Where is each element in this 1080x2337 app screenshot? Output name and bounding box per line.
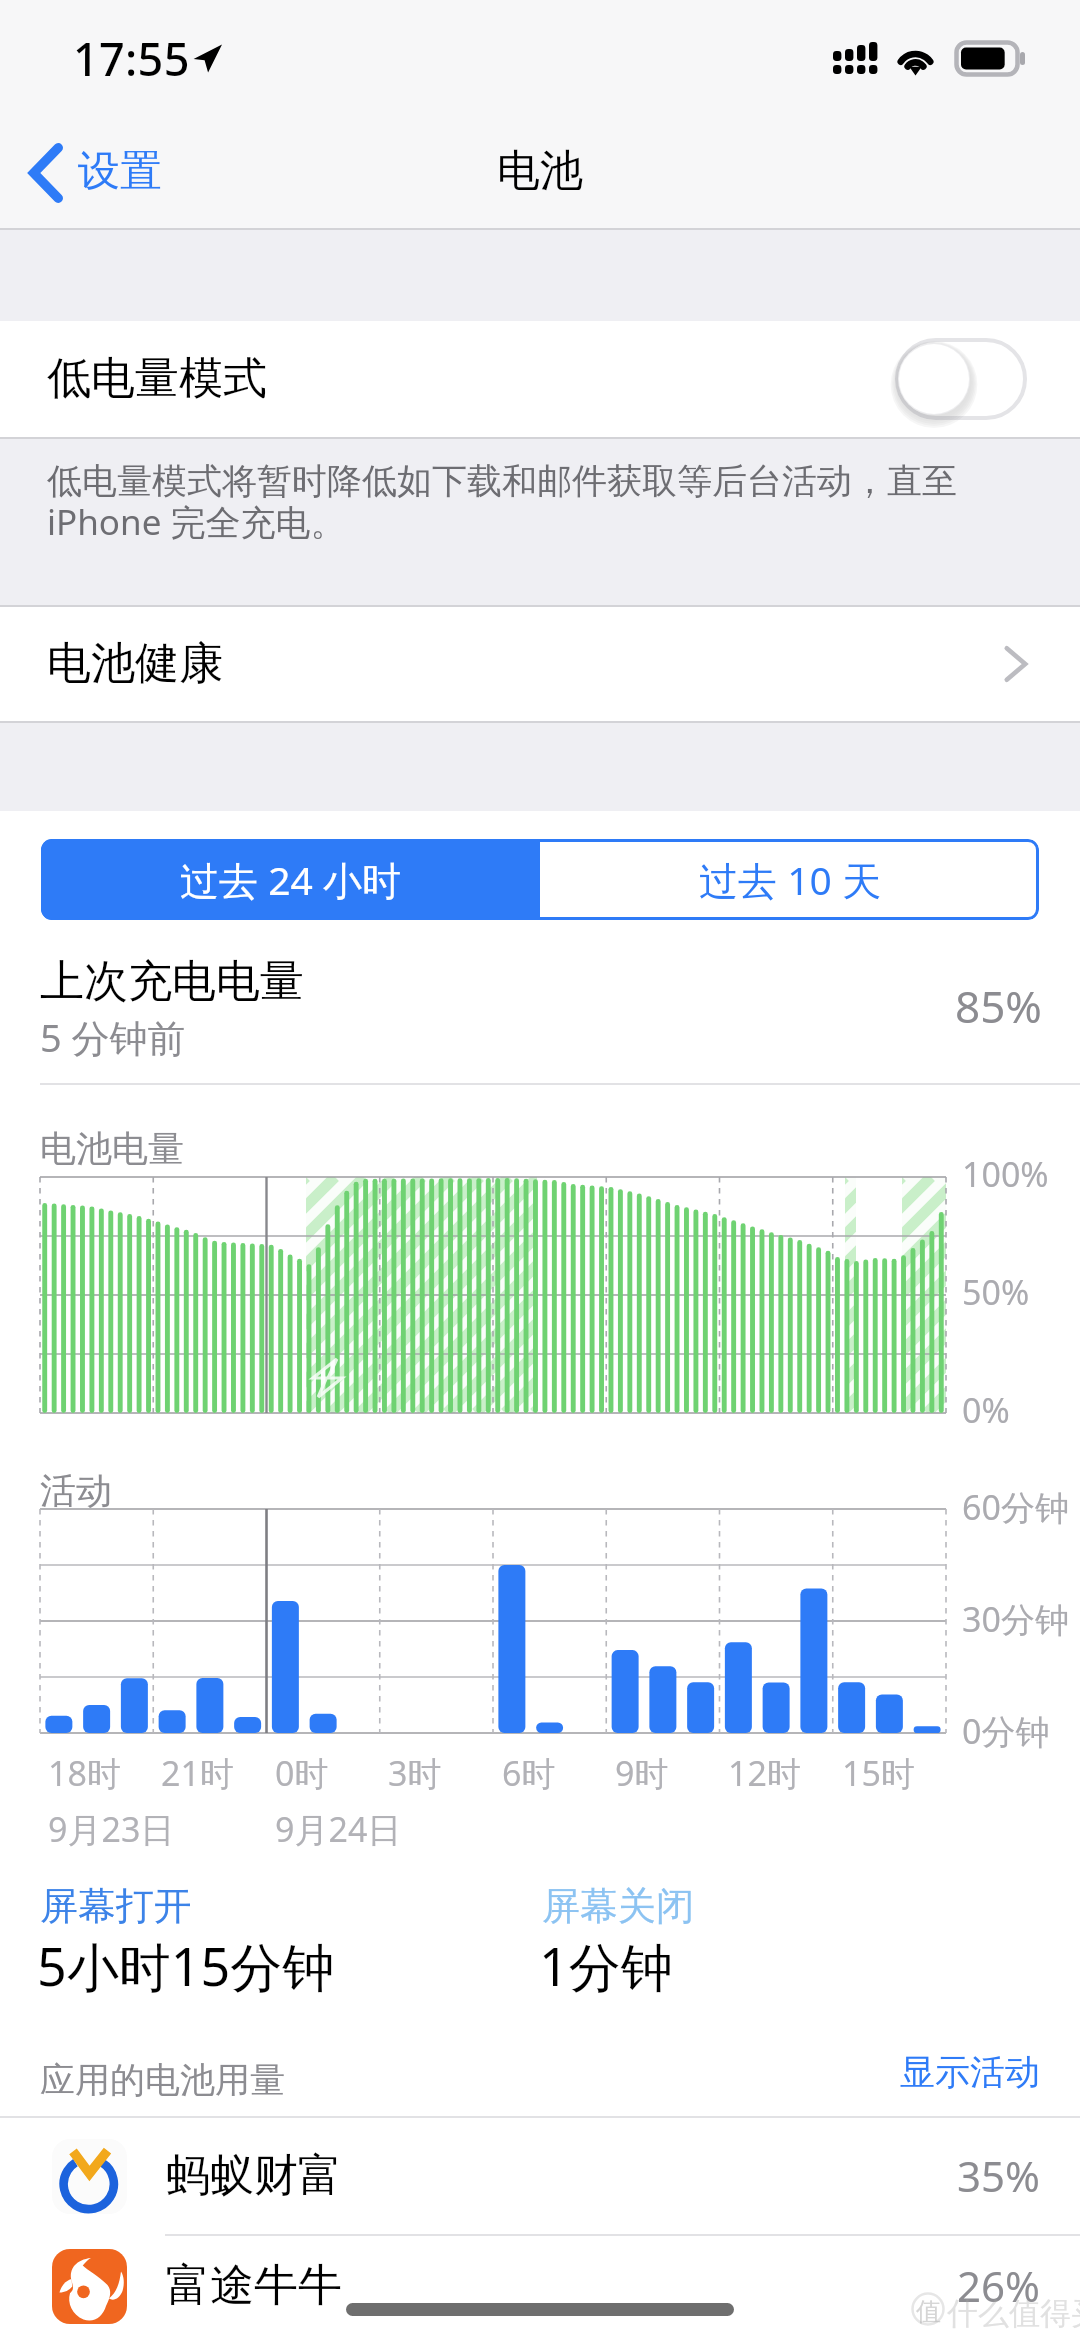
staticText: 9时: [615, 1750, 669, 1796]
staticText: 值: [916, 2296, 941, 2327]
staticText: 15时: [842, 1750, 915, 1796]
staticText: 显示活动: [900, 2050, 1040, 2094]
staticText: 100%: [962, 1151, 1049, 1197]
staticText: 应用的电池用量: [40, 2058, 285, 2102]
staticText: 电池健康: [47, 636, 223, 691]
staticText: 电池电量: [40, 1126, 184, 1171]
button[interactable]: 富途牛牛: [0, 2236, 1080, 2337]
button[interactable]: 电池健康: [0, 607, 1080, 721]
button[interactable]: 过去 24 小时: [41, 839, 540, 920]
staticText: 26%: [957, 2257, 1040, 2314]
button[interactable]: 过去 10 天: [540, 839, 1039, 920]
staticText: 9月24日: [275, 1806, 402, 1852]
staticText: 过去 24 小时: [180, 853, 401, 906]
staticText: 什么值得买: [947, 2294, 1080, 2333]
button[interactable]: 蚂蚁财富: [0, 2118, 1080, 2234]
staticText: 屏幕关闭: [542, 1882, 694, 1930]
staticText: 0%: [962, 1387, 1010, 1433]
button[interactable]: 低电量模式: [0, 321, 1080, 437]
button[interactable]: 上次充电电量: [0, 928, 1080, 1085]
staticText: 1分钟: [539, 1930, 673, 2001]
staticText: 60分钟: [962, 1484, 1069, 1530]
staticText: 过去 10 天: [699, 853, 881, 906]
staticText: 85%: [955, 976, 1042, 1036]
staticText: 3时: [388, 1750, 442, 1796]
staticText: 低电量模式: [47, 351, 267, 406]
staticText: 5小时15分钟: [37, 1930, 335, 2001]
staticText: 电池: [497, 144, 583, 198]
staticText: 5 分钟前: [40, 1011, 186, 1063]
button[interactable]: Low Power Mode toggle: [889, 332, 1033, 426]
staticText: 50%: [962, 1269, 1030, 1315]
staticText: 屏幕打开: [40, 1882, 192, 1930]
staticText: 35%: [957, 2147, 1040, 2204]
staticText: 低电量模式将暂时降低如下载和邮件获取等后台活动，直至 iPhone 完全充电。: [47, 459, 1080, 546]
staticText: 30分钟: [962, 1596, 1069, 1642]
button[interactable]: 显示活动: [864, 2028, 1080, 2108]
staticText: 0分钟: [962, 1708, 1050, 1754]
button[interactable]: 设置: [0, 133, 178, 213]
staticText: 活动: [40, 1468, 112, 1513]
staticText: 蚂蚁财富: [166, 2148, 342, 2203]
staticText: 0时: [275, 1750, 329, 1796]
staticText: 18时: [48, 1750, 121, 1796]
staticText: 6时: [502, 1750, 556, 1796]
staticText: 设置: [78, 145, 162, 198]
staticText: 17:55: [73, 28, 190, 89]
staticText: 富途牛牛: [166, 2258, 342, 2313]
staticText: 21时: [161, 1750, 234, 1796]
staticText: 12时: [728, 1750, 801, 1796]
staticText: 9月23日: [48, 1806, 175, 1852]
other: Battery Health: [1005, 646, 1027, 682]
staticText: 上次充电电量: [40, 954, 304, 1009]
